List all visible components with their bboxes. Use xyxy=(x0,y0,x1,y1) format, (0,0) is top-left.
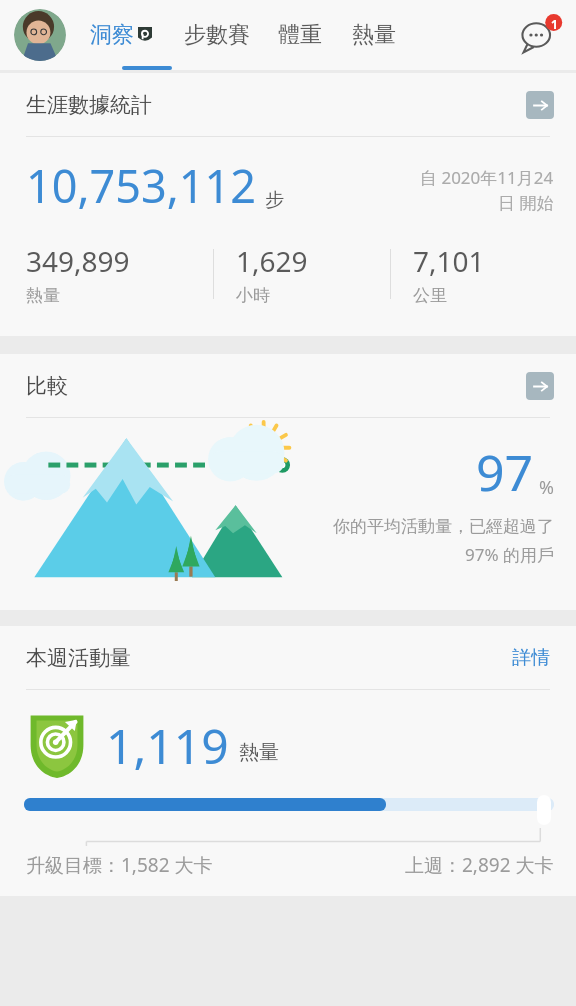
staticText: 97% 的用戶 xyxy=(465,543,554,566)
staticText: 升級目標：1,582 大卡 xyxy=(26,852,213,878)
staticText: 比較 xyxy=(26,373,68,399)
button[interactable]: Messages xyxy=(516,12,562,58)
staticText: 自 2020年11月24 xyxy=(420,166,554,189)
staticText: 步數賽 xyxy=(184,21,250,49)
button[interactable]: 洞察 xyxy=(86,21,156,49)
button[interactable]: More xyxy=(526,91,554,119)
staticText: 10,753,112 xyxy=(26,155,257,216)
staticText: 1,119 xyxy=(106,713,229,778)
staticText: 1,629 xyxy=(236,242,308,280)
staticText: 洞察 xyxy=(90,21,134,49)
staticText: 熱量 xyxy=(239,740,279,765)
staticText: 生涯數據統計 xyxy=(26,92,152,118)
staticText: % xyxy=(539,475,554,500)
staticText: 97 xyxy=(476,438,534,506)
staticText: 體重 xyxy=(278,21,322,49)
staticText: 小時 xyxy=(236,285,270,306)
staticText: 步 xyxy=(265,188,284,212)
button[interactable]: 步數賽 xyxy=(182,21,252,49)
button[interactable]: 體重 xyxy=(276,21,324,49)
button[interactable]: Profile xyxy=(14,9,66,61)
staticText: 日 開始 xyxy=(498,191,554,214)
staticText: 熱量 xyxy=(352,21,396,49)
staticText: 本週活動量 xyxy=(26,645,131,671)
staticText: 1 xyxy=(551,16,558,32)
staticText: 上週：2,892 大卡 xyxy=(405,852,554,878)
button[interactable]: More xyxy=(526,372,554,400)
staticText: 詳情 xyxy=(512,646,550,670)
staticText: 公里 xyxy=(413,285,447,306)
staticText: 熱量 xyxy=(26,285,60,306)
staticText: 你的平均活動量，已經超過了 xyxy=(333,516,554,537)
button[interactable]: 熱量 xyxy=(350,21,398,49)
staticText: 7,101 xyxy=(413,242,485,280)
button[interactable]: 詳情 xyxy=(508,642,554,674)
staticText: 349,899 xyxy=(26,242,130,280)
